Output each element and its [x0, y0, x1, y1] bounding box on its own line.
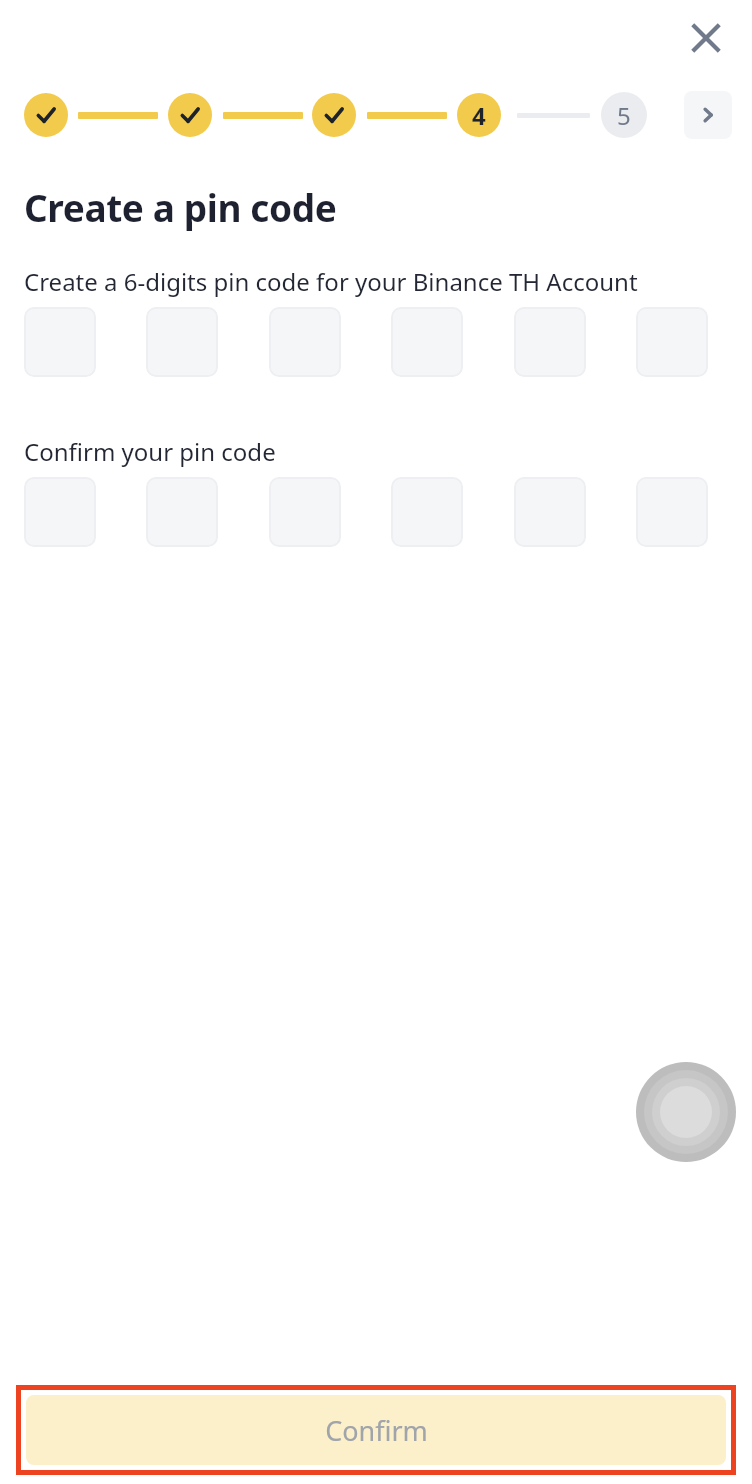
button[interactable]: Next step: [684, 91, 732, 139]
button[interactable]: Step completed: [24, 93, 68, 137]
staticText: 4: [472, 99, 486, 132]
button[interactable]: Step completed: [312, 93, 356, 137]
button[interactable]: Step completed: [168, 93, 212, 137]
staticText: Create a 6-digits pin code for your Bina…: [24, 265, 638, 298]
button[interactable]: 4: [457, 93, 501, 137]
button[interactable]: Close: [678, 10, 734, 66]
staticText: 5: [617, 99, 631, 132]
staticText: Confirm: [325, 1412, 428, 1449]
button[interactable]: Floating assistant: [636, 1062, 736, 1162]
staticText: Confirm your pin code: [24, 435, 276, 468]
button[interactable]: Confirm: [26, 1395, 726, 1465]
button[interactable]: 5: [601, 92, 647, 138]
staticText: Create a pin code: [24, 182, 337, 232]
